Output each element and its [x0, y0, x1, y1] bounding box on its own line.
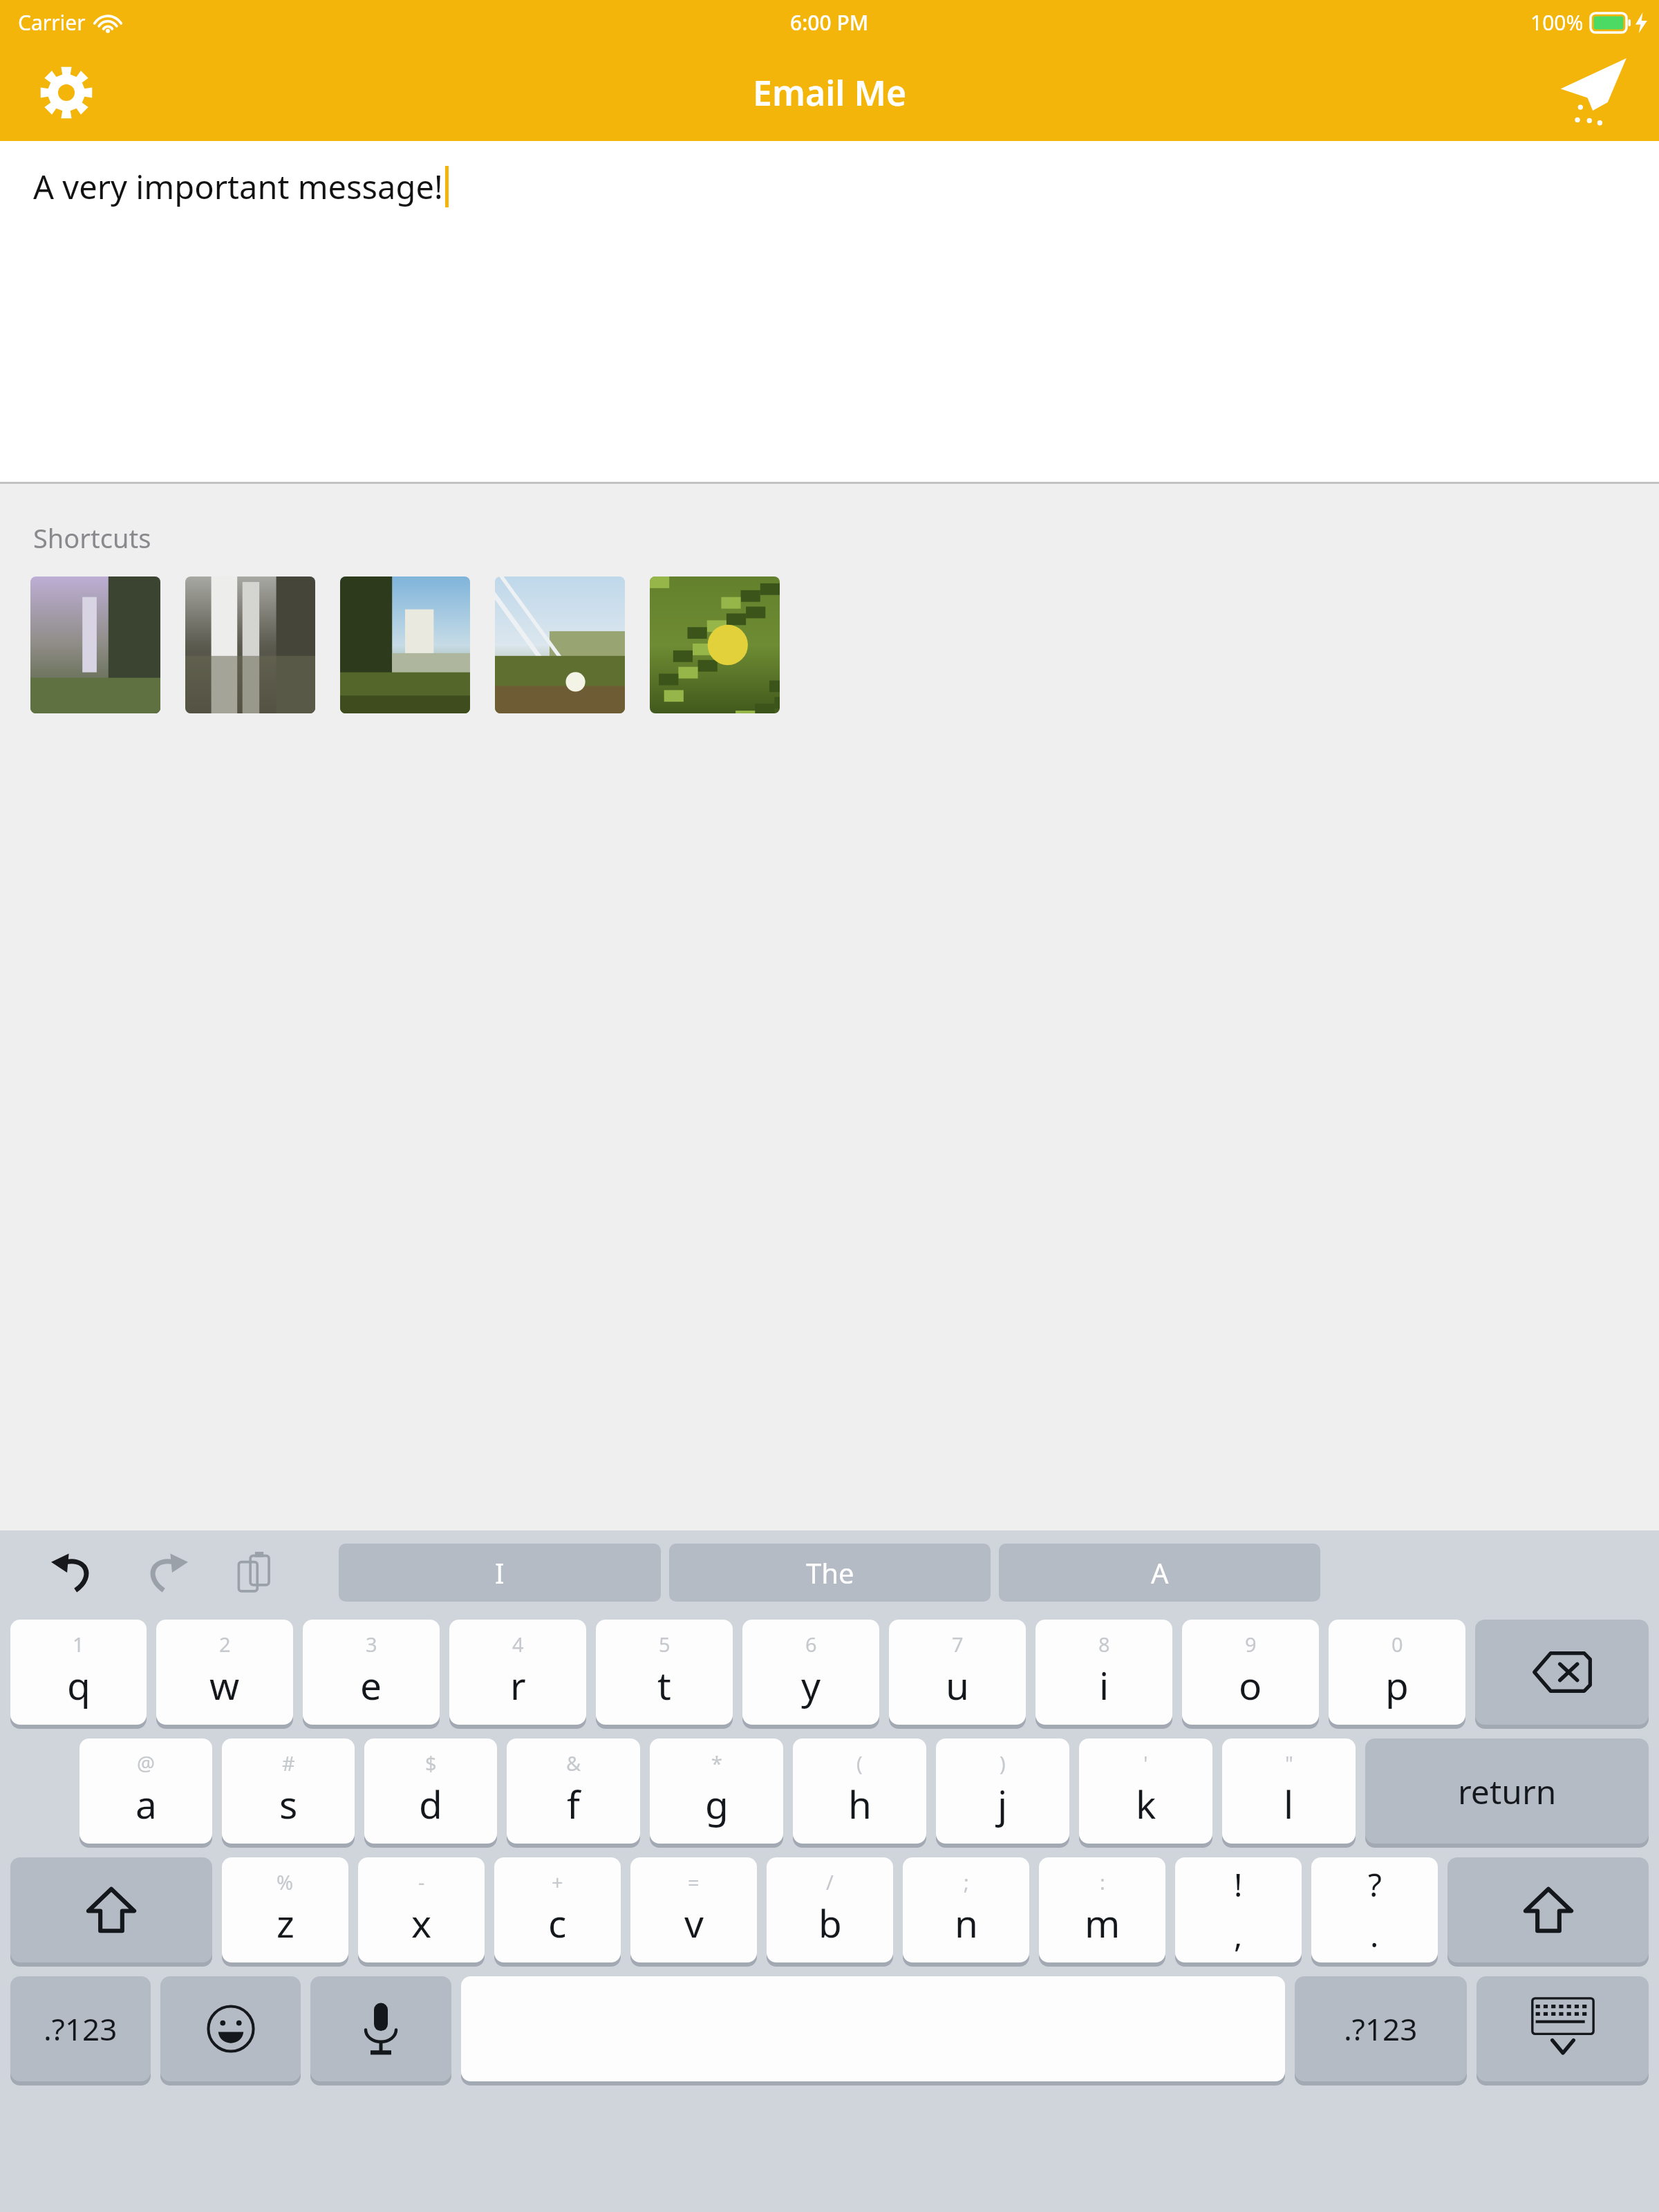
staticText: # — [282, 1750, 295, 1777]
button[interactable]: ? — [1311, 1857, 1438, 1962]
button[interactable]: % — [222, 1857, 348, 1962]
button[interactable]: 9 — [1182, 1620, 1319, 1725]
staticText: p — [1385, 1659, 1409, 1711]
staticText: q — [67, 1659, 91, 1711]
button[interactable]: Backspace — [1475, 1620, 1649, 1725]
staticText: @ — [137, 1750, 156, 1777]
staticText: 8 — [1098, 1631, 1110, 1658]
staticText: / — [826, 1868, 834, 1895]
button[interactable]: 1 — [10, 1620, 147, 1725]
button[interactable]: Redo — [131, 1538, 200, 1607]
button[interactable]: A — [999, 1544, 1320, 1602]
staticText: 6:00 PM — [790, 8, 869, 37]
button[interactable]: Shortcut 5 — [650, 577, 780, 713]
staticText: j — [997, 1778, 1008, 1830]
button[interactable]: 5 — [596, 1620, 733, 1725]
button[interactable]: return — [1365, 1738, 1649, 1844]
staticText: d — [419, 1778, 442, 1830]
button[interactable]: 4 — [449, 1620, 586, 1725]
button[interactable]: - — [358, 1857, 485, 1962]
button[interactable]: ) — [936, 1738, 1069, 1844]
button[interactable]: $ — [364, 1738, 497, 1844]
staticText: Carrier — [18, 8, 86, 37]
staticText: - — [418, 1868, 425, 1895]
button[interactable]: Shortcut 2 — [185, 577, 315, 713]
staticText: z — [276, 1897, 294, 1949]
staticText: 4 — [512, 1631, 524, 1658]
staticText: & — [566, 1750, 581, 1777]
button[interactable]: 0 — [1329, 1620, 1465, 1725]
staticText: , — [1234, 1913, 1243, 1957]
staticText: 9 — [1245, 1631, 1257, 1658]
button[interactable]: / — [767, 1857, 893, 1962]
button[interactable]: Hide keyboard — [1477, 1976, 1649, 2081]
staticText: r — [510, 1659, 526, 1711]
staticText: i — [1099, 1659, 1109, 1711]
staticText: . — [1370, 1913, 1379, 1957]
button[interactable]: 7 — [889, 1620, 1026, 1725]
staticText: w — [209, 1659, 240, 1711]
staticText: + — [552, 1868, 563, 1895]
button[interactable]: Shift — [1447, 1857, 1649, 1962]
staticText: c — [548, 1897, 567, 1949]
button[interactable]: Dictate — [310, 1976, 451, 2081]
button[interactable]: 3 — [303, 1620, 440, 1725]
staticText: m — [1085, 1897, 1121, 1949]
button[interactable]: Undo — [39, 1538, 108, 1607]
staticText: e — [360, 1659, 382, 1711]
staticText: 6 — [805, 1631, 817, 1658]
button[interactable]: .?123 — [1295, 1976, 1467, 2081]
staticText: The — [806, 1554, 854, 1591]
button[interactable]: Shortcut 3 — [340, 577, 470, 713]
button[interactable]: Send — [1544, 46, 1638, 140]
button[interactable]: Shift — [10, 1857, 212, 1962]
button[interactable]: & — [507, 1738, 640, 1844]
button[interactable]: .?123 — [10, 1976, 151, 2081]
button[interactable]: The — [669, 1544, 991, 1602]
staticText: 7 — [952, 1631, 964, 1658]
button[interactable]: Shortcut 1 — [30, 577, 160, 713]
button[interactable]: 6 — [742, 1620, 879, 1725]
staticText: l — [1284, 1778, 1294, 1830]
staticText: x — [411, 1897, 432, 1949]
button[interactable]: * — [650, 1738, 783, 1844]
staticText: $ — [425, 1750, 437, 1777]
staticText: 100% — [1530, 8, 1584, 37]
button[interactable]: ( — [793, 1738, 926, 1844]
button[interactable]: " — [1222, 1738, 1356, 1844]
button[interactable]: Paste — [221, 1538, 290, 1607]
staticText: ' — [1143, 1750, 1148, 1777]
staticText: ) — [1000, 1750, 1006, 1777]
staticText: u — [946, 1659, 969, 1711]
staticText: % — [276, 1868, 294, 1895]
staticText: = — [688, 1868, 700, 1895]
staticText: .?123 — [44, 2008, 118, 2050]
staticText: .?123 — [1344, 2008, 1418, 2050]
button[interactable]: Shortcut 4 — [495, 577, 625, 713]
button[interactable]: Space — [461, 1976, 1285, 2081]
staticText: ( — [856, 1750, 863, 1777]
button[interactable]: + — [494, 1857, 621, 1962]
staticText: g — [705, 1778, 729, 1830]
button[interactable]: = — [630, 1857, 757, 1962]
button[interactable]: Settings — [26, 53, 106, 133]
staticText: h — [848, 1778, 872, 1830]
staticText: Shortcuts — [33, 520, 151, 556]
staticText: b — [818, 1897, 842, 1949]
staticText: Email Me — [753, 69, 907, 116]
button[interactable]: ! — [1175, 1857, 1302, 1962]
staticText: " — [1285, 1750, 1293, 1777]
button[interactable]: A very important message! — [0, 141, 1659, 484]
button[interactable]: : — [1039, 1857, 1165, 1962]
staticText: n — [955, 1897, 978, 1949]
button[interactable]: Emoji — [160, 1976, 301, 2081]
button[interactable]: 2 — [156, 1620, 293, 1725]
button[interactable]: @ — [79, 1738, 212, 1844]
button[interactable]: 8 — [1035, 1620, 1172, 1725]
button[interactable]: ' — [1079, 1738, 1212, 1844]
staticText: A very important message! — [33, 165, 443, 209]
button[interactable]: ; — [903, 1857, 1029, 1962]
staticText: I — [495, 1554, 505, 1591]
button[interactable]: I — [339, 1544, 661, 1602]
button[interactable]: # — [222, 1738, 355, 1844]
